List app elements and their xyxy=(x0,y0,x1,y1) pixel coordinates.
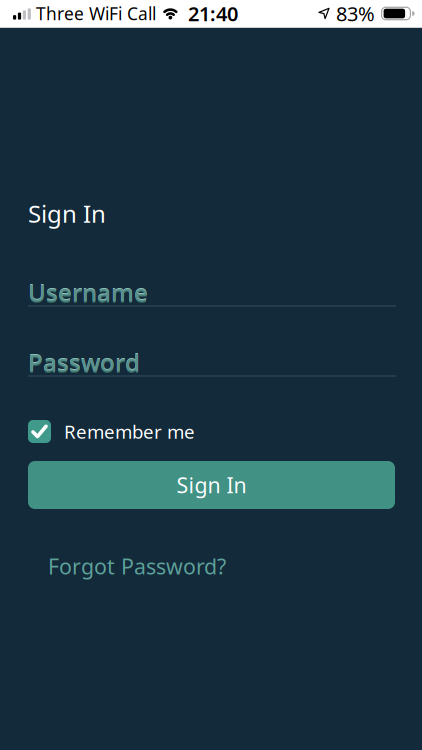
button[interactable]: Forgot Password? xyxy=(28,552,226,580)
staticText: Password xyxy=(28,347,140,378)
staticText: Password xyxy=(28,348,140,380)
staticText: Username xyxy=(28,278,148,310)
staticText: Username xyxy=(28,277,148,308)
staticText: Sign In xyxy=(28,198,106,229)
staticText: Username xyxy=(28,276,148,308)
button[interactable]: Sign In xyxy=(28,461,395,509)
staticText: Remember me xyxy=(64,419,195,444)
staticText: Password xyxy=(28,346,140,378)
staticText: Three WiFi Call xyxy=(36,2,156,25)
staticText: 83% xyxy=(336,0,375,27)
staticText: Forgot Password? xyxy=(48,552,226,580)
button[interactable]: Password xyxy=(28,350,396,377)
button[interactable]: Remember me xyxy=(28,420,195,443)
button[interactable]: Username xyxy=(28,280,396,307)
staticText: 21:40 xyxy=(188,0,238,27)
staticText: Sign In xyxy=(176,471,246,499)
